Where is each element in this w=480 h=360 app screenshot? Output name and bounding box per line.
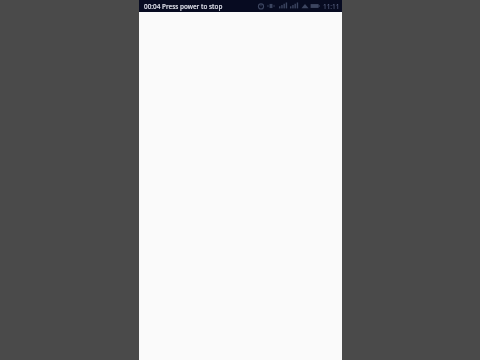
staticText: 11:11 [323,2,340,11]
other: Wi-Fi [301,2,309,10]
other: Mobile signal [290,2,299,10]
button[interactable]: 00:04 Press power to stop [144,2,223,11]
button[interactable]: System status icons [257,0,340,12]
other: Battery [310,2,320,10]
other: Alarm set [257,2,265,10]
other: Vibrate mode [267,2,275,10]
staticText: 00:04 Press power to stop [144,2,223,11]
other: Mobile signal [279,2,288,10]
